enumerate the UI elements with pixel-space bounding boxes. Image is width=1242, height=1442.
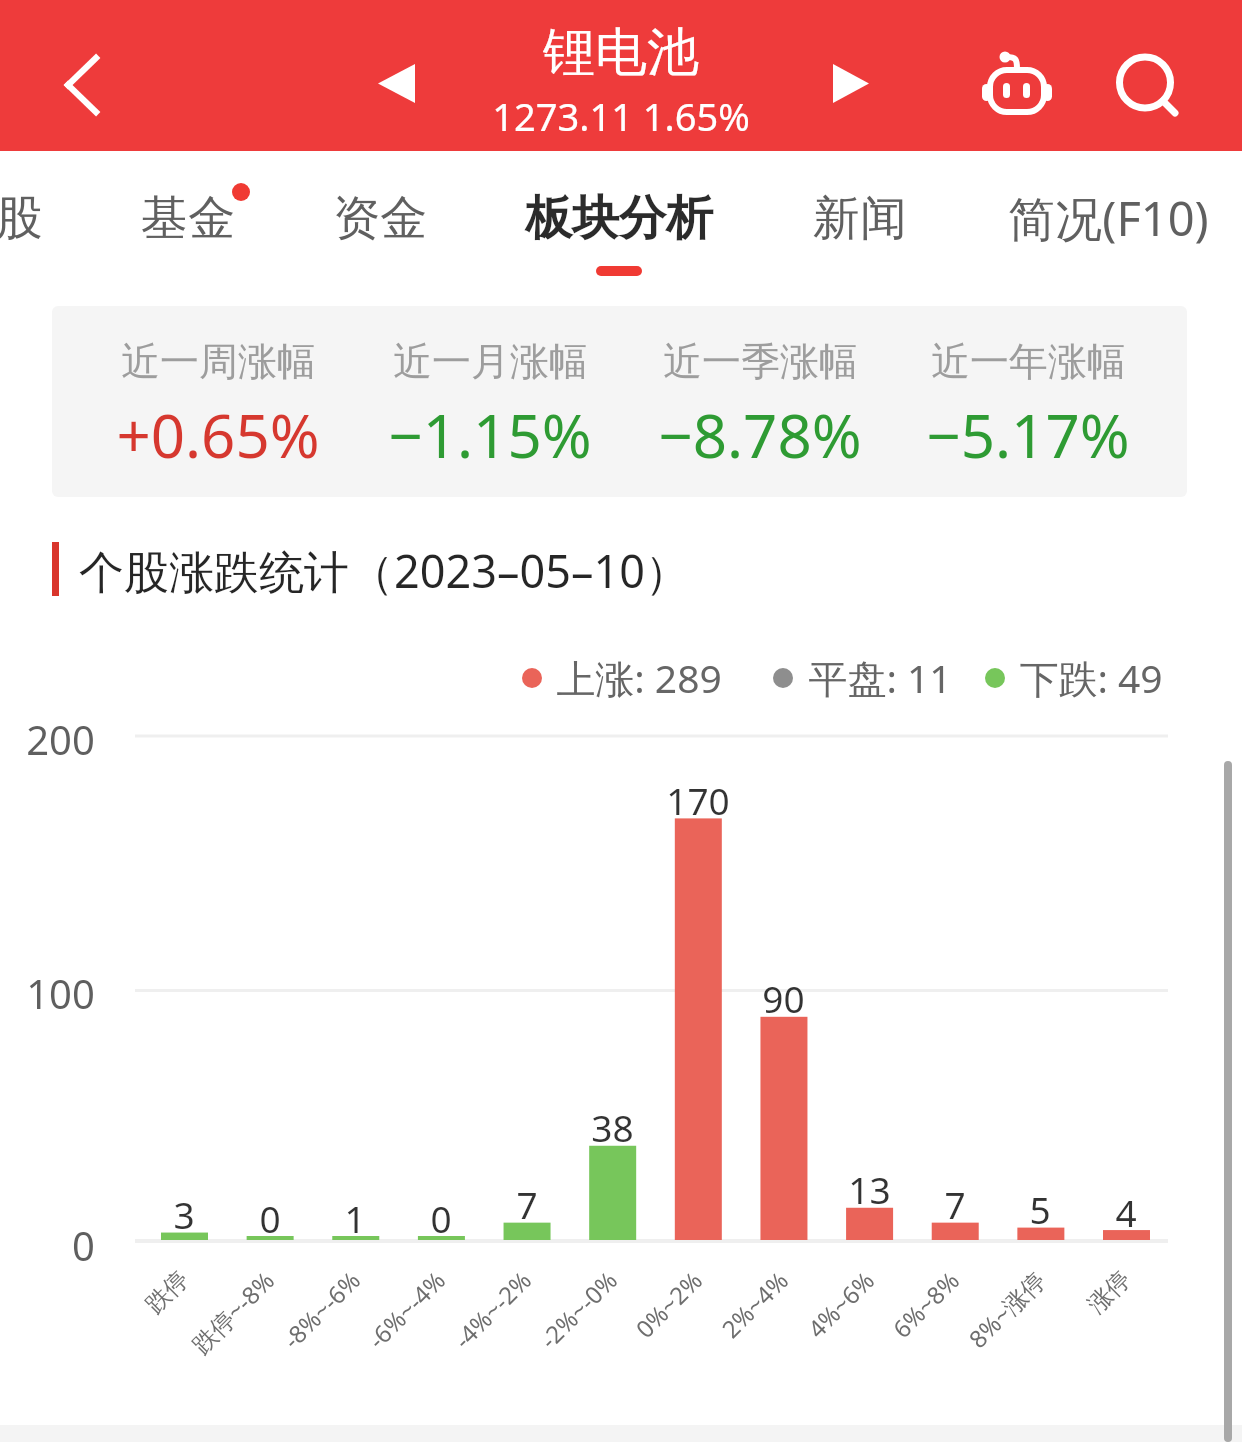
staticText: 新闻: [813, 189, 907, 248]
staticText: 股: [0, 189, 43, 248]
staticText: 平盘: 11: [808, 651, 952, 703]
staticText: 简况(F10): [1008, 186, 1209, 250]
button[interactable]: 近一年涨幅: [898, 306, 1158, 497]
staticText: -8%~-6%: [275, 1264, 367, 1356]
staticText: -2%~-0%: [532, 1264, 624, 1356]
staticText: 8%~涨停: [961, 1264, 1052, 1355]
staticText: -4%~-2%: [446, 1264, 538, 1356]
staticText: 个股涨跌统计（2023–05–10）: [79, 540, 690, 598]
staticText: 基金: [141, 189, 235, 248]
button[interactable]: Previous sector: [362, 45, 442, 125]
staticText: 1: [344, 1193, 366, 1241]
button[interactable]: 基金: [58, 170, 318, 266]
button[interactable]: Search: [1105, 45, 1195, 135]
button[interactable]: 简况(F10): [978, 170, 1238, 266]
staticText: 跌停: [139, 1264, 195, 1320]
staticText: 跌停~-8%: [184, 1264, 281, 1361]
button[interactable]: 资金: [250, 170, 510, 266]
button[interactable]: 新闻: [730, 170, 990, 266]
staticText: −1.15%: [388, 394, 592, 466]
button[interactable]: Next sector: [808, 45, 888, 125]
staticText: 近一月涨幅: [393, 337, 588, 386]
staticText: 38: [591, 1102, 634, 1150]
staticText: 0: [430, 1193, 452, 1241]
button[interactable]: 近一周涨幅: [88, 306, 348, 497]
staticText: 90: [762, 973, 805, 1021]
staticText: 锂电池: [543, 20, 699, 80]
staticText: 近一年涨幅: [931, 337, 1126, 386]
staticText: 近一季涨幅: [663, 337, 858, 386]
staticText: −5.17%: [926, 394, 1130, 466]
staticText: 下跌: 49: [1019, 651, 1163, 703]
staticText: 200: [26, 712, 95, 766]
staticText: 7: [944, 1179, 966, 1227]
staticText: +0.65%: [116, 394, 320, 466]
staticText: 近一周涨幅: [121, 337, 316, 386]
button[interactable]: 股: [0, 170, 149, 266]
staticText: 0: [259, 1193, 281, 1241]
button[interactable]: 近一月涨幅: [360, 306, 620, 497]
staticText: 0: [72, 1218, 95, 1272]
button[interactable]: AI assistant: [975, 40, 1075, 140]
staticText: 2%~4%: [714, 1264, 795, 1345]
staticText: 上涨: 289: [556, 651, 722, 703]
staticText: 13: [848, 1164, 891, 1212]
staticText: 4%~6%: [800, 1264, 881, 1345]
staticText: 0%~2%: [628, 1264, 709, 1345]
button[interactable]: 板块分析: [489, 170, 749, 266]
staticText: 3: [173, 1189, 195, 1237]
staticText: 板块分析: [525, 189, 713, 248]
staticText: 1273.11 1.65%: [492, 90, 750, 136]
staticText: 6%~8%: [885, 1264, 966, 1345]
staticText: −8.78%: [658, 394, 862, 466]
button[interactable]: 近一季涨幅: [630, 306, 890, 497]
staticText: 170: [666, 775, 730, 823]
staticText: 资金: [333, 189, 427, 248]
staticText: 5: [1029, 1184, 1051, 1232]
staticText: 涨停: [1081, 1264, 1137, 1320]
staticText: 100: [26, 966, 95, 1020]
staticText: -6%~-4%: [360, 1264, 452, 1356]
staticText: 7: [516, 1179, 538, 1227]
staticText: 4: [1115, 1187, 1137, 1235]
button[interactable]: Back: [35, 33, 135, 143]
